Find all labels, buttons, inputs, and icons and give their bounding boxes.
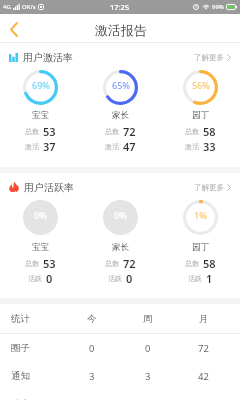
staticText: 3 — [145, 370, 151, 383]
button[interactable]: 0% — [80, 200, 160, 286]
button[interactable]: 圈子 — [0, 334, 240, 362]
button[interactable]: 65% — [80, 70, 160, 154]
staticText: 用户活跃率 — [24, 181, 74, 194]
staticText: 家长 — [112, 242, 129, 253]
staticText: 0 — [89, 342, 95, 355]
button[interactable]: 56% — [160, 70, 240, 154]
staticText: 总数 — [185, 259, 199, 268]
button[interactable]: 69% — [0, 70, 80, 154]
staticText: 活跃 — [188, 274, 202, 283]
staticText: 0 — [145, 342, 151, 355]
staticText: 总数 — [105, 259, 119, 268]
staticText: 园丁 — [192, 110, 209, 121]
staticText: 99% — [212, 3, 224, 11]
staticText: 65% — [112, 79, 130, 91]
staticText: 活跃 — [28, 274, 42, 283]
button[interactable]: 1% — [160, 200, 240, 286]
staticText: 激活报告 — [95, 22, 147, 38]
staticText: 72 — [123, 124, 136, 139]
button[interactable]: 了解更多 — [188, 51, 231, 64]
staticText: 53 — [43, 124, 56, 139]
staticText: 了解更多 — [194, 183, 224, 192]
button[interactable]: 0% — [0, 200, 80, 286]
button[interactable]: 统计 — [0, 304, 240, 333]
staticText: 72 — [123, 256, 136, 271]
staticText: 了解更多 — [194, 53, 224, 62]
staticText: OK/s — [22, 3, 36, 11]
staticText: 33 — [203, 139, 216, 154]
staticText: 总数 — [25, 127, 39, 136]
staticText: 激活 — [105, 142, 119, 151]
button[interactable]: Back — [0, 14, 26, 43]
staticText: 0 — [126, 271, 133, 286]
staticText: 1% — [194, 209, 207, 221]
staticText: 统计 — [11, 313, 30, 325]
staticText: 58 — [203, 256, 216, 271]
staticText: 圈子 — [11, 342, 30, 354]
staticText: 激活 — [25, 142, 39, 151]
staticText: 3 — [89, 370, 95, 383]
staticText: 今 — [87, 313, 97, 325]
button[interactable]: 了解更多 — [188, 181, 231, 194]
staticText: 激活 — [185, 142, 199, 151]
staticText: 总数 — [105, 127, 119, 136]
staticText: 园丁 — [192, 242, 209, 253]
button[interactable]: 通知 — [0, 362, 240, 390]
staticText: 56% — [192, 79, 210, 91]
staticText: 58 — [203, 124, 216, 139]
staticText: 总数 — [185, 127, 199, 136]
staticText: 通知 — [11, 370, 30, 382]
staticText: 月 — [199, 313, 209, 325]
staticText: 活跃 — [108, 274, 122, 283]
staticText: 53 — [43, 256, 56, 271]
staticText: 宝宝 — [32, 242, 49, 253]
staticText: 0% — [114, 209, 127, 221]
staticText: 用户激活率 — [23, 51, 73, 64]
staticText: 总数 — [25, 259, 39, 268]
staticText: 42 — [198, 370, 209, 383]
staticText: 69% — [32, 79, 50, 91]
staticText: 周 — [143, 313, 153, 325]
staticText: 17:25 — [110, 2, 130, 12]
staticText: 0% — [34, 209, 47, 221]
staticText: 37 — [43, 139, 56, 154]
staticText: 1 — [206, 271, 213, 286]
staticText: 0 — [46, 271, 53, 286]
staticText: 家长 — [112, 110, 129, 121]
staticText: 72 — [198, 342, 209, 355]
staticText: 宝宝 — [32, 110, 49, 121]
staticText: 动态 — [11, 398, 30, 400]
staticText: 4G — [3, 3, 11, 11]
staticText: 47 — [123, 139, 136, 154]
